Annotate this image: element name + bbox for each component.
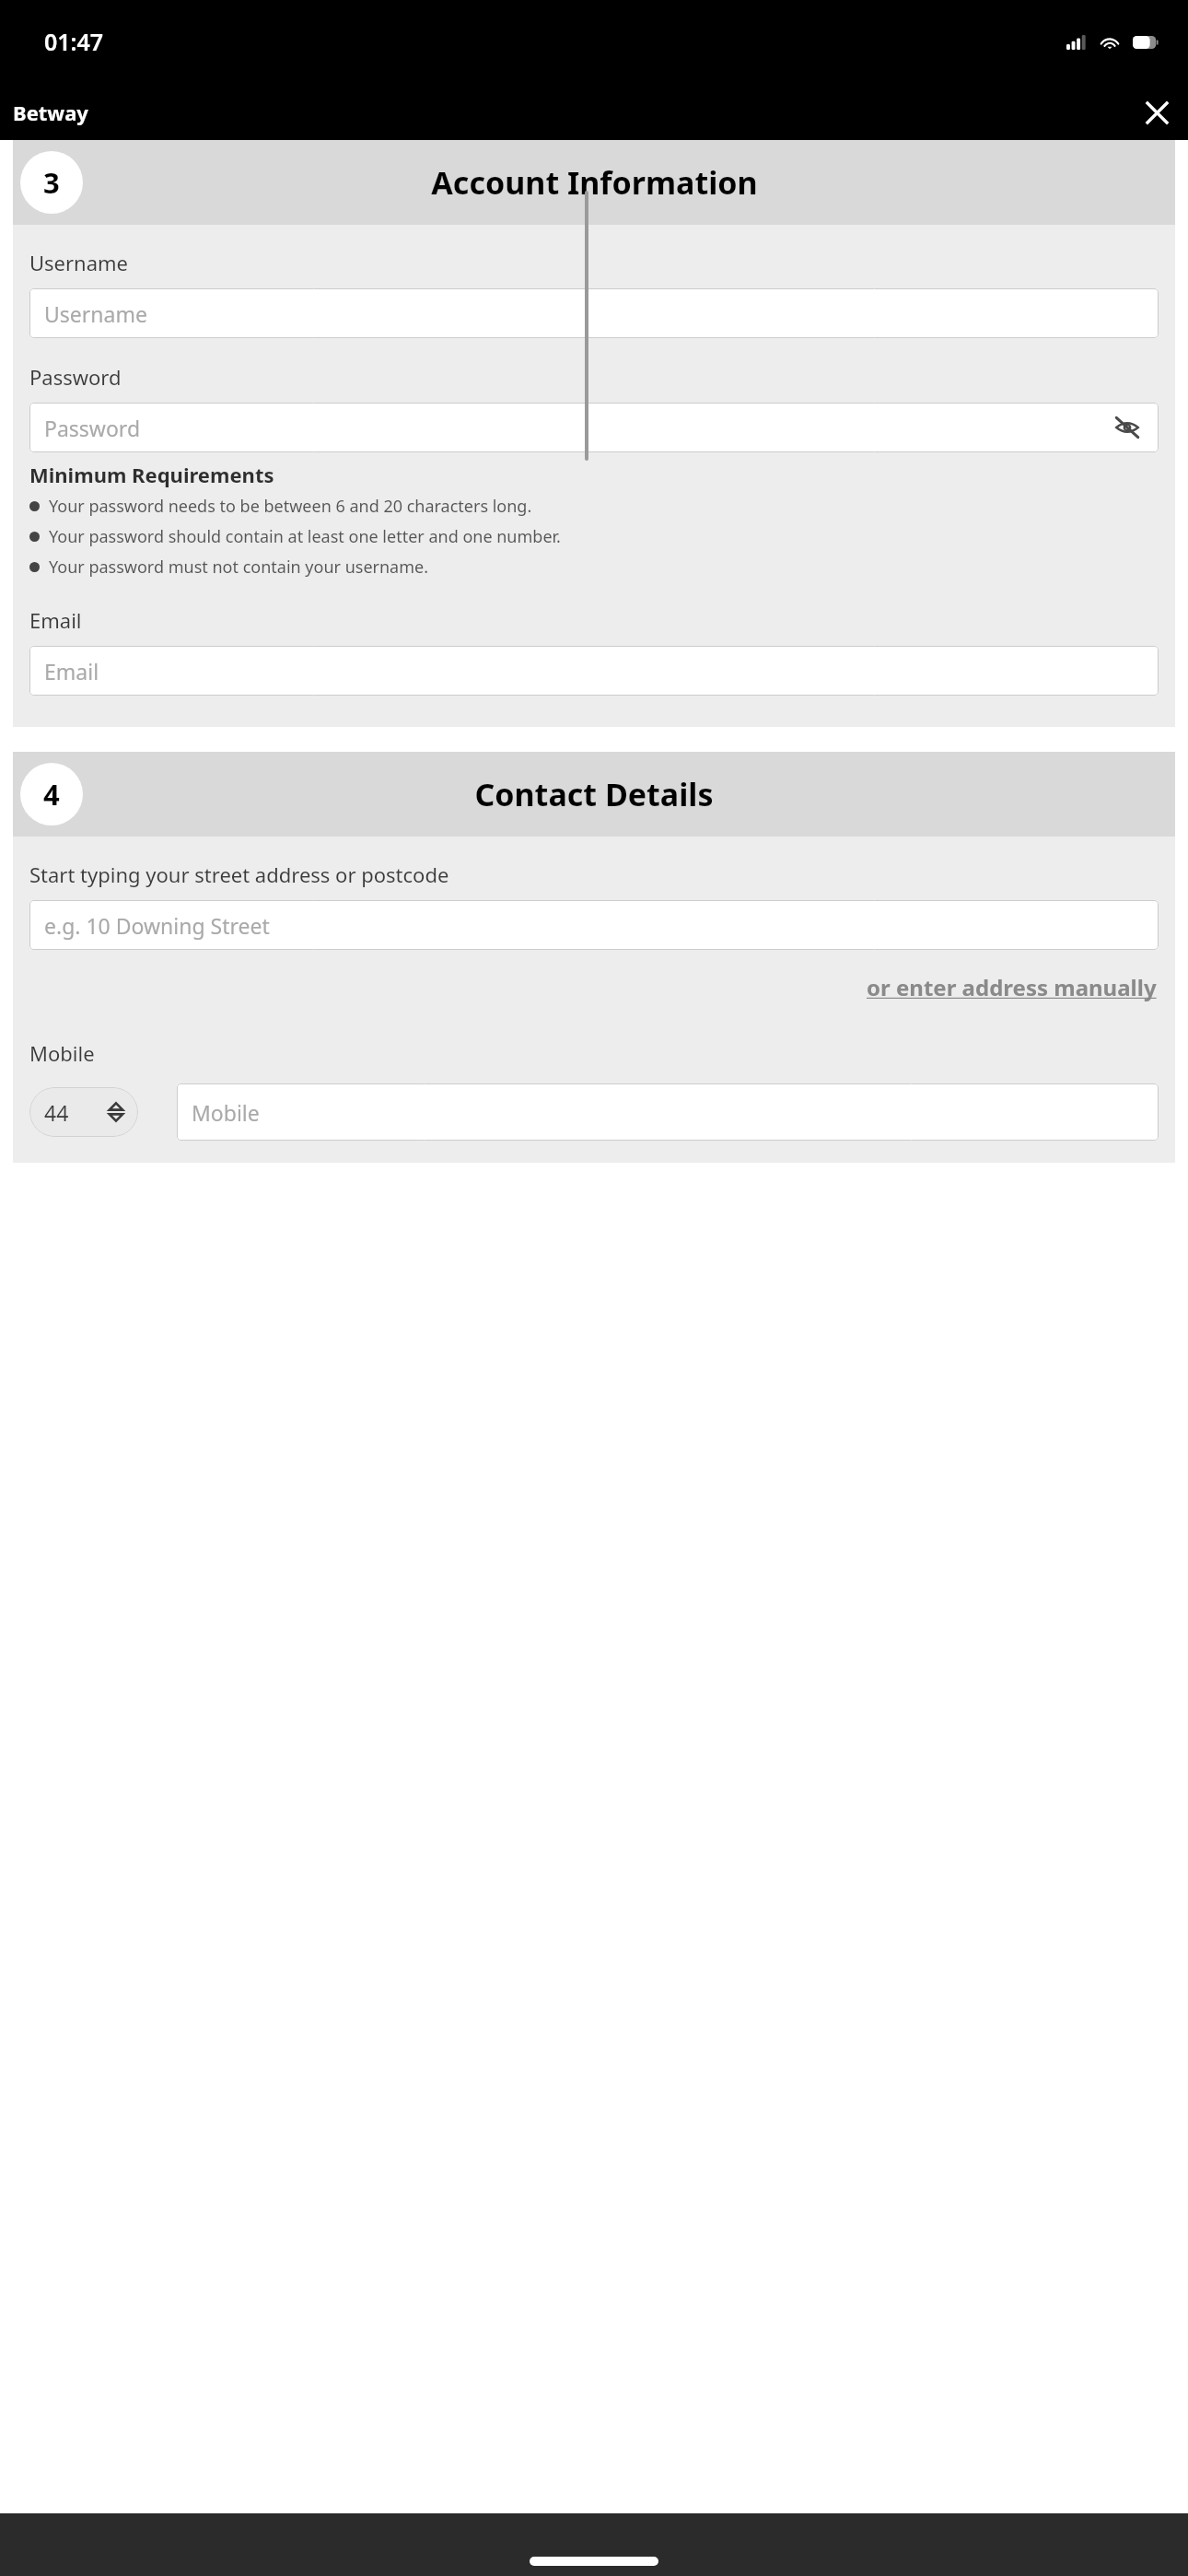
staticText: Your password should contain at least on… [49,525,561,548]
button[interactable]: Username [29,288,1159,338]
button[interactable]: 3 [13,140,1175,225]
button[interactable]: Email [29,646,1159,696]
button[interactable]: 44 [29,1087,138,1137]
staticText: Password [29,363,122,391]
staticText: Your password must not contain your user… [49,556,428,579]
staticText: Start typing your street address or post… [29,861,449,888]
staticText: Your password needs to be between 6 and … [49,495,532,518]
staticText: 4 [43,775,60,814]
staticText: or enter address manually [867,972,1157,1002]
staticText: Account Information [431,161,758,204]
staticText: Password [44,414,141,442]
staticText: Mobile [192,1098,260,1127]
button[interactable]: Close [1136,92,1177,133]
staticText: Username [29,249,129,276]
staticText: 01:47 [44,26,104,57]
staticText: 3 [43,163,60,202]
button[interactable]: Password [29,403,1159,452]
staticText: Contact Details [474,773,714,815]
staticText: Email [29,606,82,634]
button[interactable]: Show password [1111,411,1144,444]
button[interactable]: e.g. 10 Downing Street [29,900,1159,950]
staticText: Mobile [29,1039,95,1067]
staticText: Betway [13,99,88,126]
staticText: Username [44,299,147,328]
staticText: 44 [44,1098,69,1127]
staticText: e.g. 10 Downing Street [44,911,270,940]
button[interactable]: Mobile [177,1083,1159,1141]
staticText: Minimum Requirements [29,461,274,488]
staticText: Email [44,657,99,685]
button[interactable]: or enter address manually [865,970,1159,1004]
button[interactable]: 4 [13,752,1175,837]
